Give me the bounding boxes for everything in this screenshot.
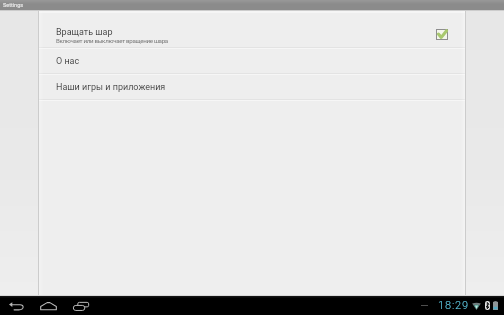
button[interactable]: Вращать шар bbox=[436, 29, 448, 40]
button[interactable]: О нас bbox=[39, 49, 465, 73]
staticText: О нас bbox=[56, 56, 80, 67]
button[interactable]: Наши игры и приложения bbox=[39, 75, 465, 99]
staticText: Включает или выключает вращение шара bbox=[56, 37, 168, 44]
button[interactable]: Back bbox=[8, 298, 25, 314]
staticText: Settings bbox=[3, 2, 24, 8]
button[interactable]: Home bbox=[40, 298, 57, 314]
staticText: Наши игры и приложения bbox=[56, 82, 166, 93]
staticText: 18:29 bbox=[438, 299, 469, 312]
button[interactable]: Status bbox=[421, 299, 498, 312]
button[interactable]: Вращать шар bbox=[39, 13, 465, 47]
staticText: Вращать шар bbox=[56, 27, 113, 38]
button[interactable]: Recent apps bbox=[72, 298, 89, 314]
